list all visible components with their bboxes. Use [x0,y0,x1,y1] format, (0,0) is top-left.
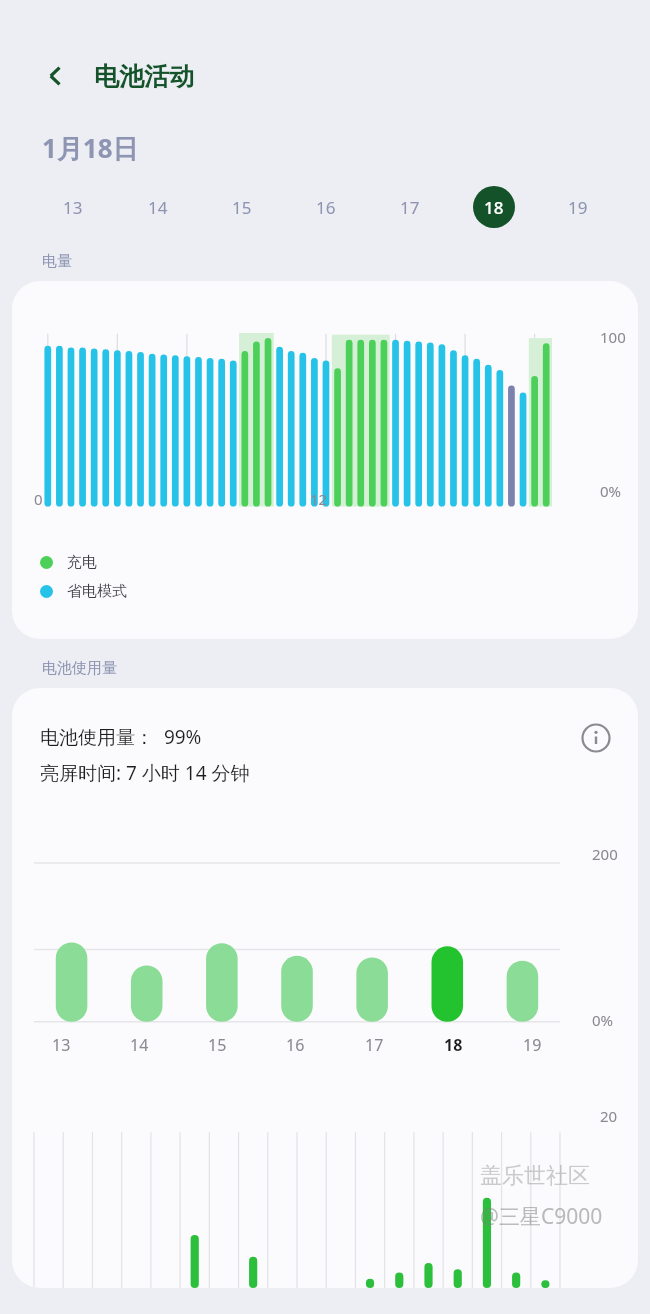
button[interactable]: 13 [30,184,115,230]
button[interactable]: 18 [452,184,536,230]
staticText: 15 [232,196,252,219]
button[interactable]: 16 [284,184,368,230]
staticText: 电量 [42,252,72,271]
staticText: 13 [52,1034,71,1056]
staticText: 17 [365,1034,384,1056]
staticText: 16 [286,1034,305,1056]
staticText: 14 [148,196,168,219]
staticText: 1月18日 [42,130,139,166]
button[interactable]: 17 [368,184,452,230]
staticText: @三星C9000 [480,1202,603,1231]
button[interactable]: 14 [115,184,200,230]
staticText: 19 [568,196,588,219]
button[interactable]: Back [36,56,76,96]
staticText: 亮屏时间: 7 小时 14 分钟 [40,760,250,786]
staticText: 200 [592,844,618,864]
staticText: 18 [444,1034,463,1056]
staticText: 19 [523,1034,542,1056]
staticText: 16 [316,196,336,219]
staticText: 盖乐世社区 [480,1162,590,1190]
staticText: 省电模式 [67,582,127,601]
staticText: 0% [600,481,622,501]
staticText: 18 [484,196,504,219]
staticText: 13 [63,196,83,219]
staticText: 充电 [67,553,97,572]
button[interactable]: Info [576,718,616,758]
staticText: 电池活动 [94,61,194,92]
staticText: 100 [600,327,626,347]
staticText: 17 [400,196,420,219]
staticText: 14 [130,1034,149,1056]
staticText: 20 [600,1106,618,1126]
staticText: 电池使用量： 99% [40,724,202,750]
staticText: 电池使用量 [42,659,117,678]
button[interactable]: 15 [200,184,284,230]
staticText: 0% [592,1010,614,1030]
staticText: 12 [310,489,328,509]
staticText: 0 [34,489,43,509]
button[interactable]: 19 [536,184,620,230]
staticText: 15 [208,1034,227,1056]
